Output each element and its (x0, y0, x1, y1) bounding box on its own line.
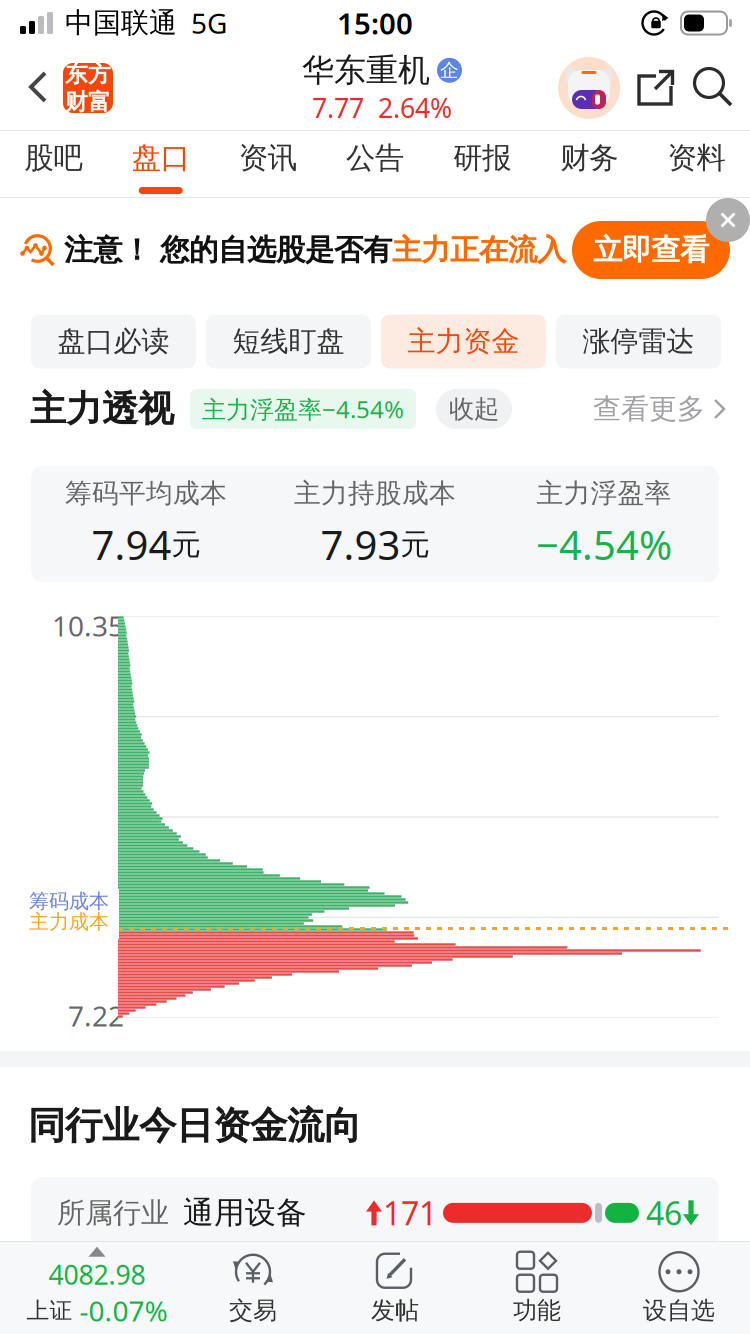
button[interactable]: 收起 (436, 389, 512, 429)
staticText: 主力正在流入 (392, 232, 566, 268)
staticText: 4082.98 (48, 1257, 145, 1292)
button[interactable]: 查看更多 (593, 385, 726, 433)
button[interactable]: 主力资金 (381, 314, 546, 368)
staticText: 财务 (560, 140, 618, 176)
staticText: 涨停雷达 (582, 324, 694, 359)
staticText: 上证 (26, 1297, 72, 1325)
staticText: 筹码平均成本 (65, 477, 227, 510)
button[interactable]: 返回 (0, 48, 121, 128)
button[interactable]: 交易 (182, 1242, 324, 1334)
button[interactable]: 关闭 (706, 198, 750, 242)
staticText: 盘口必读 (57, 324, 169, 359)
staticText: 46 (646, 1192, 682, 1234)
staticText: 7.77 2.64% (312, 90, 452, 125)
staticText: 盘口 (132, 140, 190, 176)
button[interactable]: 智能助手 (558, 57, 620, 119)
staticText: 资讯 (239, 140, 297, 176)
staticText: 股吧 (25, 140, 83, 176)
staticText: 主力成本 (29, 910, 109, 934)
staticText: 注意！ 您的自选股是否有 (64, 232, 392, 268)
button[interactable]: 公告 (321, 131, 428, 197)
staticText: −4.54% (536, 518, 672, 571)
staticText: 元 (171, 526, 200, 562)
staticText: 公告 (346, 140, 404, 176)
staticText: 7.94 (91, 518, 171, 571)
staticText: 所属行业 (57, 1196, 169, 1230)
button[interactable]: 发帖 (324, 1242, 466, 1334)
staticText: 7.93 (320, 518, 400, 571)
button[interactable]: 资讯 (214, 131, 321, 197)
staticText: 企 (440, 59, 459, 82)
staticText: 研报 (453, 140, 511, 176)
button[interactable]: 短线盯盘 (206, 314, 371, 368)
staticText: 同行业今日资金流向 (28, 1103, 361, 1149)
staticText: 通用设备 (183, 1194, 307, 1232)
staticText: 收起 (449, 393, 499, 424)
staticText: 主力浮盈率−4.54% (202, 393, 404, 425)
staticText: 10.35 (52, 607, 124, 644)
staticText: 171 (383, 1192, 437, 1234)
staticText: 主力资金 (407, 324, 519, 359)
button[interactable]: 资料 (643, 131, 750, 197)
staticText: -0.07% (79, 1292, 167, 1329)
staticText: 主力透视 (30, 387, 174, 431)
button[interactable]: 立即查看 (572, 221, 730, 279)
staticText: 元 (400, 526, 429, 562)
button[interactable]: 分享 (636, 68, 676, 108)
button[interactable]: 搜索 (692, 66, 736, 110)
staticText: 设自选 (643, 1296, 715, 1325)
staticText: 15:00 (337, 3, 413, 42)
staticText: 查看更多 (593, 392, 705, 426)
staticText: 筹码成本 (29, 889, 109, 914)
button[interactable]: 涨停雷达 (556, 314, 721, 368)
button[interactable]: 功能 (466, 1242, 608, 1334)
staticText: 东方 (65, 60, 111, 88)
button[interactable]: 财务 (536, 131, 643, 197)
button[interactable]: 研报 (429, 131, 536, 197)
staticText: 主力持股成本 (294, 477, 456, 510)
staticText: 7.22 (68, 997, 124, 1034)
staticText: 交易 (229, 1296, 277, 1325)
button[interactable]: 股吧 (0, 131, 107, 197)
button[interactable]: 4082.98 (0, 1242, 182, 1334)
staticText: 中国联通 (65, 6, 177, 40)
staticText: 资料 (667, 140, 725, 176)
staticText: 5G (191, 4, 227, 42)
button[interactable]: 设自选 (608, 1242, 750, 1334)
staticText: 华东重机 (302, 51, 430, 90)
button[interactable]: 盘口 (107, 131, 214, 197)
staticText: 财富 (65, 88, 111, 116)
staticText: 主力浮盈率 (536, 477, 671, 510)
button[interactable]: 盘口必读 (31, 314, 196, 368)
staticText: 立即查看 (593, 232, 709, 268)
staticText: 短线盯盘 (232, 324, 344, 359)
staticText: 发帖 (371, 1296, 419, 1325)
staticText: 功能 (513, 1296, 561, 1325)
